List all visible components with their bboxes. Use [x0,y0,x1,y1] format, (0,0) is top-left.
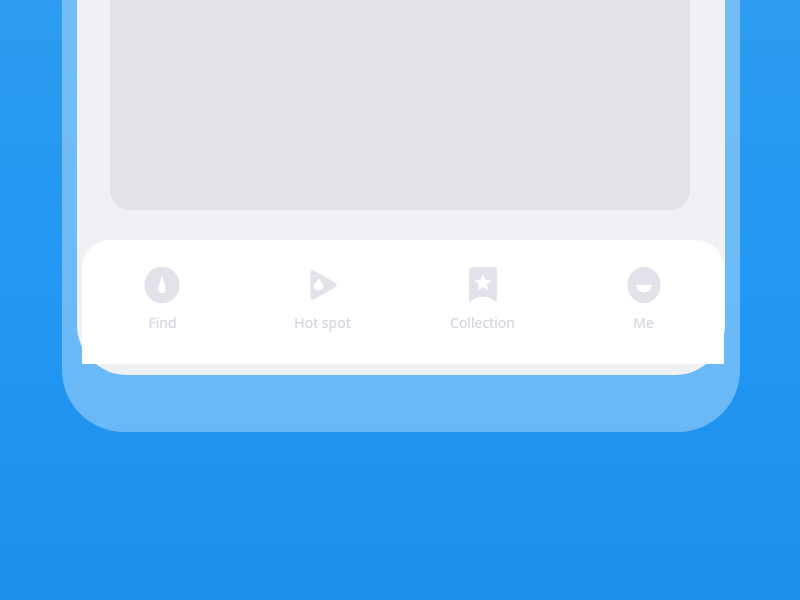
button[interactable]: Me [563,240,724,364]
button[interactable]: Hot spot [242,240,402,364]
button[interactable]: Collection [402,240,563,364]
staticText: Hot spot [294,313,351,332]
staticText: Me [633,313,654,332]
button[interactable]: Find [82,240,242,364]
staticText: Collection [450,313,515,332]
staticText: Find [148,313,177,332]
